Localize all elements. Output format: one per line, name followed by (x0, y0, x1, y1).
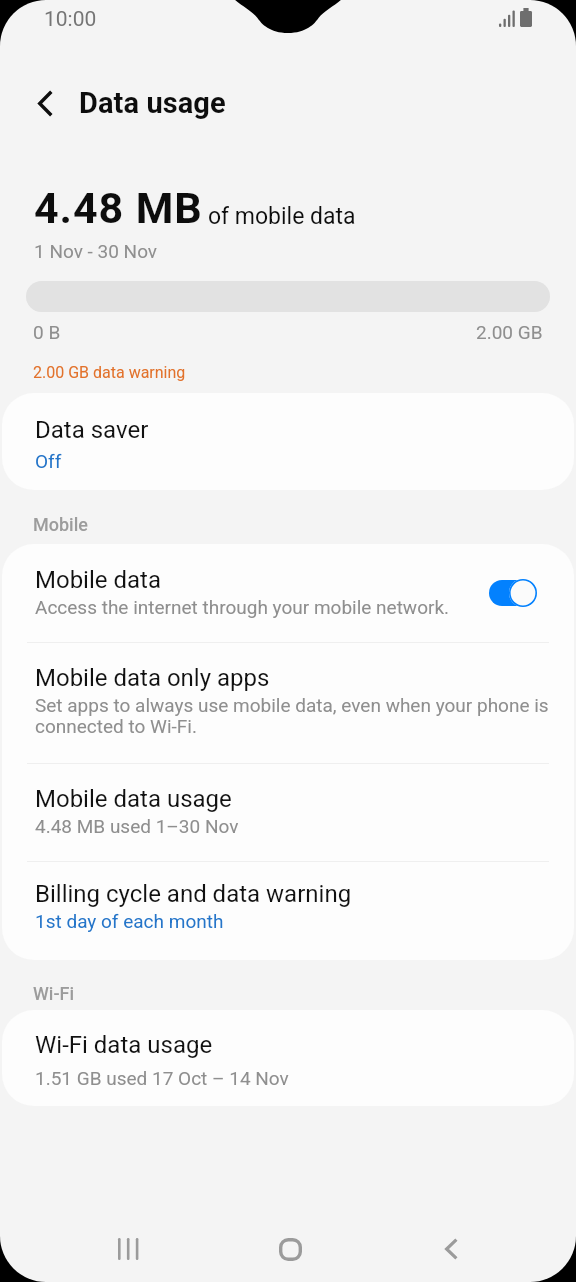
staticText: Data usage (79, 86, 226, 120)
staticText: connected to Wi-Fi. (35, 715, 197, 737)
button[interactable]: Mobile data usage (2, 764, 574, 861)
staticText: 1.51 GB used 17 Oct – 14 Nov (35, 1067, 289, 1089)
button[interactable]: Mobile data on (489, 574, 545, 612)
staticText: 2.00 GB (476, 321, 543, 343)
button[interactable]: Back (411, 1219, 491, 1279)
staticText: of mobile data (208, 203, 356, 230)
staticText: Mobile data only apps (35, 664, 270, 692)
button[interactable]: Recent apps (88, 1219, 168, 1279)
staticText: Wi-Fi data usage (35, 1031, 213, 1059)
staticText: 10:00 (44, 7, 97, 32)
button[interactable]: Navigate up (21, 79, 69, 127)
staticText: Mobile (33, 514, 88, 535)
button[interactable]: Data saver (2, 393, 574, 490)
staticText: 4.48 MB (34, 183, 203, 233)
button[interactable]: Mobile data only apps (2, 643, 574, 763)
staticText: 1st day of each month (35, 910, 224, 932)
staticText: Billing cycle and data warning (35, 880, 352, 908)
staticText: 2.00 GB data warning (33, 363, 186, 382)
staticText: Access the internet through your mobile … (35, 596, 450, 618)
button[interactable]: Home (250, 1219, 330, 1279)
staticText: 0 B (33, 321, 61, 343)
staticText: Wi-Fi (33, 983, 75, 1004)
button[interactable]: Wi-Fi data usage (2, 1010, 574, 1106)
button[interactable]: Billing cycle and data warning (2, 862, 574, 960)
staticText: 1 Nov - 30 Nov (34, 240, 158, 262)
staticText: 4.48 MB used 1–30 Nov (35, 815, 239, 837)
staticText: Mobile data usage (35, 785, 232, 813)
staticText: Mobile data (35, 566, 161, 594)
staticText: Set apps to always use mobile data, even… (35, 694, 549, 716)
button[interactable]: Mobile data (2, 544, 574, 642)
staticText: Data saver (35, 416, 149, 444)
staticText: Off (35, 450, 62, 472)
